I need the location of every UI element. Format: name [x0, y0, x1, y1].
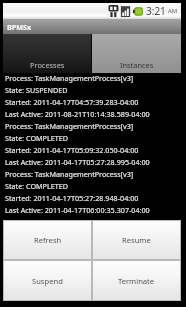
staticText: Suspend: [32, 276, 63, 286]
staticText: Instances: [120, 60, 154, 70]
button[interactable]: Terminate: [93, 261, 180, 300]
button[interactable]: Processes: [3, 34, 91, 73]
button[interactable]: Suspend: [4, 261, 91, 300]
staticText: Process: TaskManagementProcess[v3]: [5, 121, 134, 131]
staticText: Process: TaskManagementProcess[v3]: [5, 73, 134, 83]
button[interactable]: Instances: [92, 34, 181, 73]
staticText: State: COMPLETED: [5, 181, 68, 191]
staticText: State: COMPLETED: [5, 133, 68, 143]
staticText: Processes: [30, 60, 65, 70]
button[interactable]: Process: TaskManagementProcess[v3]: [3, 169, 181, 217]
staticText: Started: 2011-04-17T04:57:39.283-04:00: [5, 97, 139, 107]
button[interactable]: Process: TaskManagementProcess[v3]: [3, 73, 181, 121]
button[interactable]: Refresh: [4, 221, 91, 259]
staticText: Refresh: [34, 235, 62, 245]
button[interactable]: Process: TaskManagementProcess[v3]: [3, 121, 181, 169]
staticText: Last Active: 2011-08-21T10:14:38.589-04:…: [5, 109, 150, 119]
staticText: Last Active: 2011-04-17T05:27:28.995-04:…: [5, 157, 150, 167]
staticText: Resume: [122, 235, 151, 245]
staticText: Process: TaskManagementProcess[v3]: [5, 169, 134, 179]
staticText: AM: [168, 7, 178, 15]
staticText: State: SUSPENDED: [5, 85, 68, 95]
staticText: Last Active: 2011-04-17T06:00:35.307-04:…: [5, 205, 150, 215]
button[interactable]: Resume: [93, 221, 180, 259]
staticText: 3:21: [146, 4, 166, 18]
staticText: Started: 2011-04-17T05:27:28.948-04:00: [5, 193, 139, 203]
staticText: Started: 2011-04-17T05:09:32.050-04:00: [5, 145, 139, 155]
staticText: BPMSx: [7, 22, 32, 32]
staticText: Terminate: [118, 276, 155, 286]
